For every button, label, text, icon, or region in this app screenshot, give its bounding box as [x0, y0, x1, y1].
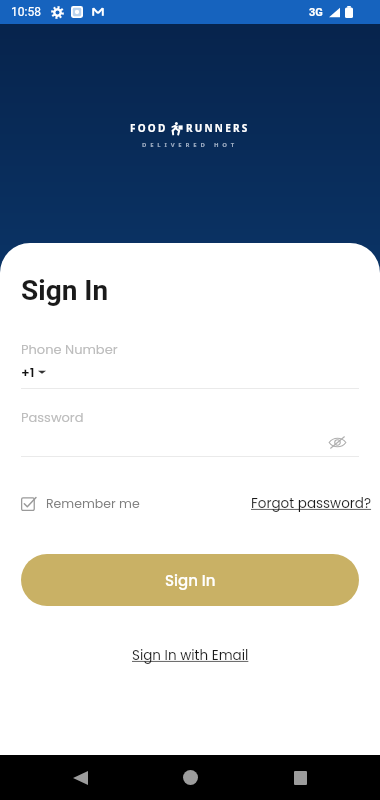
staticText: RUNNERS	[186, 121, 250, 135]
staticText: Remember me	[46, 495, 140, 512]
staticText: +1	[21, 363, 35, 381]
button[interactable]: Recents	[276, 755, 324, 800]
staticText: FOOD	[130, 121, 168, 135]
staticText: Sign In	[165, 570, 216, 591]
button[interactable]: Remember me	[21, 495, 140, 512]
staticText: Sign In with Email	[132, 646, 249, 665]
staticText: Phone Number	[21, 340, 118, 358]
staticText: Password	[21, 408, 84, 426]
button[interactable]: Forgot password?	[251, 494, 372, 513]
button[interactable]: Sign In	[21, 554, 359, 606]
staticText: 10:58	[11, 5, 41, 19]
staticText: DELIVERED HOT	[142, 141, 238, 149]
staticText: Forgot password?	[251, 494, 372, 513]
button[interactable]: Back	[56, 755, 104, 800]
button[interactable]: Sign In with Email	[132, 646, 249, 665]
button[interactable]: Home	[166, 755, 214, 800]
staticText: 3G	[309, 6, 323, 19]
staticText: Sign In	[21, 274, 109, 307]
button[interactable]: Show password	[326, 432, 348, 452]
